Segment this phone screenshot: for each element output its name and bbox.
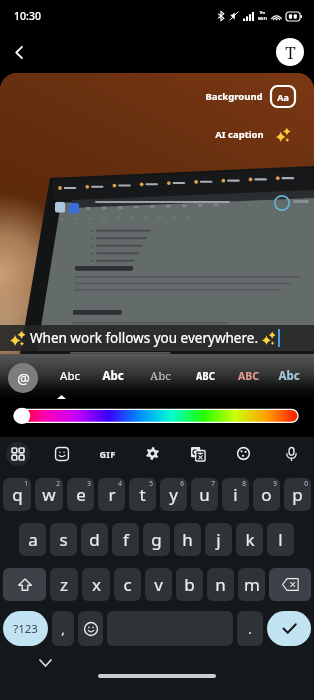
staticText: x <box>92 573 101 596</box>
staticText: Abc <box>278 368 300 384</box>
staticText: e <box>76 483 86 506</box>
staticText: Abc <box>60 368 80 384</box>
button[interactable]: s <box>50 523 77 556</box>
staticText: b <box>184 573 195 596</box>
staticText: t <box>139 483 146 506</box>
staticText: Vo WiFi <box>258 10 267 22</box>
staticText: z <box>60 573 68 596</box>
button[interactable]: k <box>236 523 263 556</box>
staticText: a <box>28 528 38 551</box>
button[interactable]: z <box>50 568 78 601</box>
button[interactable]: r <box>98 478 125 511</box>
button[interactable]: y <box>160 478 187 511</box>
staticText: Background <box>205 90 263 103</box>
button[interactable]: j <box>205 523 232 556</box>
button[interactable]: Done <box>267 611 311 646</box>
button[interactable]: Hide keyboard <box>33 652 57 674</box>
staticText: c <box>123 573 132 596</box>
staticText: p <box>292 483 303 506</box>
button[interactable]: Settings <box>135 437 169 470</box>
button[interactable]: m <box>238 568 265 601</box>
button[interactable]: ABC <box>228 366 268 386</box>
button[interactable]: l <box>267 523 294 556</box>
staticText: 0 <box>304 479 308 488</box>
staticText: @ <box>17 369 30 388</box>
staticText: 6 <box>180 479 184 488</box>
button[interactable]: b <box>176 568 203 601</box>
staticText: 5 <box>149 479 153 488</box>
button[interactable]: Shift <box>3 568 46 601</box>
button[interactable]: , <box>52 611 74 646</box>
staticText: ABC <box>196 369 215 383</box>
staticText: w <box>42 483 56 506</box>
button[interactable]: Abc <box>93 366 133 386</box>
button[interactable]: h <box>174 523 201 556</box>
button[interactable]: e <box>67 478 94 511</box>
staticText: GIF <box>99 448 116 460</box>
staticText: s <box>59 528 68 551</box>
button[interactable]: x <box>82 568 110 601</box>
button[interactable]: Abc <box>140 366 180 386</box>
button[interactable]: Theme <box>226 437 260 470</box>
button[interactable]: ABC <box>185 366 225 386</box>
button[interactable]: t <box>129 478 156 511</box>
staticText: ?123 <box>13 621 38 637</box>
button[interactable]: Backspace <box>269 568 311 601</box>
button[interactable]: ?123 <box>3 611 48 646</box>
button[interactable]: d <box>81 523 108 556</box>
button[interactable]: Mention <box>8 363 38 393</box>
button[interactable]: GIF <box>90 437 124 470</box>
button[interactable]: Abc <box>50 366 90 386</box>
staticText: f <box>123 528 129 551</box>
button[interactable]: Voice input <box>274 437 308 470</box>
button[interactable]: c <box>114 568 141 601</box>
staticText: 1 <box>24 479 28 488</box>
staticText: 2 <box>56 479 60 488</box>
staticText: k <box>245 528 255 551</box>
button[interactable]: v <box>145 568 172 601</box>
button[interactable]: . <box>237 611 263 646</box>
button[interactable]: Background <box>205 84 295 108</box>
staticText: u <box>199 483 210 506</box>
button[interactable]: w <box>35 478 63 511</box>
staticText: ABC <box>238 369 259 383</box>
staticText: Abc <box>102 368 124 384</box>
staticText: d <box>89 528 100 551</box>
button[interactable]: Abc <box>269 366 309 386</box>
staticText: q <box>12 483 23 506</box>
button[interactable]: Back <box>5 38 33 66</box>
staticText: 4 <box>118 479 122 488</box>
staticText: 8 <box>242 479 246 488</box>
button[interactable]: u <box>191 478 218 511</box>
staticText: AI caption <box>215 128 264 141</box>
staticText: 7 <box>211 479 215 488</box>
button[interactable]: q <box>3 478 31 511</box>
staticText: r <box>108 483 116 506</box>
button[interactable]: o <box>253 478 280 511</box>
button[interactable]: g <box>143 523 170 556</box>
button[interactable]: Text tool <box>276 38 304 66</box>
staticText: . <box>248 620 252 638</box>
staticText: T <box>285 41 296 64</box>
staticText: l <box>278 528 283 551</box>
staticText: g <box>151 528 162 551</box>
staticText: v <box>154 573 163 596</box>
staticText: , <box>61 620 65 638</box>
button[interactable]: Stickers <box>45 437 79 470</box>
staticText: o <box>261 483 272 506</box>
staticText: n <box>215 573 226 596</box>
button[interactable]: Translate <box>181 437 215 470</box>
staticText: y <box>169 483 178 506</box>
staticText: 3 <box>87 479 91 488</box>
button[interactable]: a <box>19 523 46 556</box>
button[interactable]: p <box>284 478 311 511</box>
button[interactable]: Apps <box>6 442 30 466</box>
staticText: h <box>182 528 193 551</box>
button[interactable]: i <box>222 478 249 511</box>
button[interactable]: f <box>112 523 139 556</box>
staticText: Abc <box>150 368 171 384</box>
button[interactable]: AI caption <box>215 123 293 145</box>
button[interactable]: Emoji <box>78 611 103 646</box>
button[interactable]: n <box>207 568 234 601</box>
